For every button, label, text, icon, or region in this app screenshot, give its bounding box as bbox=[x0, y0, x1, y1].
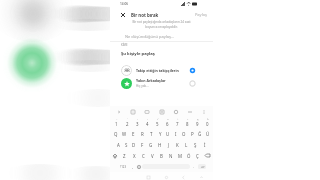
staticText: Yakın Arkadaşlar bbox=[136, 78, 166, 83]
staticText: J bbox=[168, 142, 170, 148]
button[interactable]: Yakın Arkadaşlar bbox=[110, 76, 213, 90]
staticText: Ne düşündüğünü paylaş... bbox=[125, 34, 175, 39]
staticText: 14:06 bbox=[120, 2, 129, 6]
button[interactable]: Y bbox=[156, 128, 164, 139]
button[interactable]: Backspace bbox=[202, 150, 212, 161]
button[interactable]: W bbox=[120, 128, 129, 139]
staticText: G bbox=[149, 142, 153, 148]
staticText: U bbox=[166, 131, 170, 137]
button[interactable]: T bbox=[147, 128, 156, 139]
staticText: V bbox=[151, 153, 154, 159]
staticText: X bbox=[133, 153, 136, 159]
button[interactable]: K bbox=[173, 139, 182, 150]
button[interactable]: Tool 4 bbox=[173, 109, 179, 115]
button[interactable]: • bbox=[142, 117, 152, 128]
button[interactable]: H bbox=[155, 139, 164, 150]
staticText: I bbox=[175, 131, 177, 137]
button[interactable]: Close bbox=[118, 10, 127, 19]
staticText: 5 bbox=[156, 121, 159, 127]
button[interactable]: ÷ bbox=[172, 117, 182, 128]
staticText: Y bbox=[159, 131, 162, 137]
button[interactable]: C bbox=[139, 150, 148, 161]
staticText: W bbox=[122, 131, 127, 137]
button[interactable]: × bbox=[182, 117, 192, 128]
staticText: H bbox=[158, 142, 162, 148]
button[interactable]: Tool 6 bbox=[201, 109, 207, 115]
button[interactable]: Tool 1 bbox=[130, 109, 136, 115]
button[interactable]: Enter bbox=[197, 161, 206, 172]
button[interactable]: N bbox=[166, 150, 175, 161]
button[interactable]: Ç bbox=[193, 150, 202, 161]
button[interactable]: V bbox=[148, 150, 157, 161]
staticText: 6 bbox=[166, 121, 169, 127]
staticText: 2 bbox=[126, 121, 129, 127]
button[interactable]: Ğ bbox=[196, 128, 204, 139]
staticText: Şu kişiyle paylaş bbox=[121, 51, 155, 57]
button[interactable]: P bbox=[188, 128, 196, 139]
button[interactable]: D bbox=[130, 139, 138, 150]
button[interactable]: | bbox=[132, 117, 142, 128]
staticText: R bbox=[141, 131, 144, 137]
staticText: √ bbox=[157, 118, 159, 121]
staticText: 9 bbox=[196, 121, 199, 127]
staticText: × bbox=[187, 118, 189, 121]
button[interactable]: X bbox=[129, 150, 139, 161]
button[interactable]: Tool 5 bbox=[187, 109, 193, 115]
button[interactable]: Tool 2 bbox=[144, 109, 150, 115]
button[interactable]: G bbox=[146, 139, 155, 150]
button[interactable]: Ö bbox=[184, 150, 193, 161]
button[interactable]: Hide keyboard bbox=[198, 174, 205, 180]
staticText: , bbox=[132, 164, 133, 169]
button[interactable]: B bbox=[157, 150, 166, 161]
staticText: B bbox=[160, 153, 163, 159]
button[interactable]: π bbox=[162, 117, 172, 128]
staticText: 4 bbox=[146, 121, 149, 127]
button[interactable]: L bbox=[182, 139, 191, 150]
staticText: Z bbox=[123, 153, 126, 159]
button[interactable]: Back bbox=[180, 174, 187, 180]
button[interactable]: Ş bbox=[191, 139, 200, 150]
staticText: Bir not paylaştığında arkadaşların 24 sa… bbox=[116, 20, 207, 28]
staticText: C bbox=[142, 153, 145, 159]
staticText: İ bbox=[204, 142, 206, 148]
button[interactable]: A bbox=[114, 139, 122, 150]
button[interactable]: U bbox=[164, 128, 172, 139]
button[interactable]: İ bbox=[200, 139, 209, 150]
button[interactable]: Ü bbox=[204, 128, 212, 139]
button[interactable]: S bbox=[122, 139, 130, 150]
button[interactable]: O bbox=[180, 128, 188, 139]
button[interactable]: Tool 3 bbox=[159, 109, 165, 115]
staticText: Bir not bırak bbox=[131, 12, 159, 18]
button[interactable]: Shift bbox=[111, 150, 119, 161]
staticText: ÷ bbox=[177, 118, 179, 121]
button[interactable]: ¶ bbox=[192, 117, 202, 128]
staticText: . bbox=[193, 164, 194, 169]
button[interactable]: Q bbox=[111, 128, 120, 139]
button[interactable]: R bbox=[138, 128, 147, 139]
button[interactable]: Z bbox=[119, 150, 129, 161]
button[interactable]: ` bbox=[122, 117, 132, 128]
button[interactable]: E bbox=[129, 128, 138, 139]
staticText: 1 bbox=[115, 121, 118, 127]
button[interactable]: Recents bbox=[145, 174, 152, 180]
staticText: E bbox=[132, 131, 135, 137]
staticText: T bbox=[150, 131, 153, 137]
button[interactable]: J bbox=[164, 139, 173, 150]
button[interactable]: Paylaş bbox=[194, 11, 208, 18]
button[interactable]: ?123 bbox=[118, 161, 129, 172]
button[interactable]: Home bbox=[163, 174, 170, 180]
button[interactable]: Emoji bbox=[135, 161, 142, 172]
button[interactable]: Takip ettiğin takipçilerin bbox=[110, 63, 213, 77]
button[interactable]: Comma bbox=[129, 161, 135, 172]
button[interactable]: √ bbox=[152, 117, 162, 128]
button[interactable]: Tool 0 bbox=[116, 109, 122, 115]
staticText: Q bbox=[114, 131, 118, 137]
button[interactable]: M bbox=[175, 150, 184, 161]
button[interactable]: I bbox=[172, 128, 180, 139]
button[interactable]: ~ bbox=[111, 117, 122, 128]
button[interactable]: F bbox=[138, 139, 146, 150]
button[interactable]: ∆ bbox=[202, 117, 212, 128]
staticText: N bbox=[169, 153, 173, 159]
